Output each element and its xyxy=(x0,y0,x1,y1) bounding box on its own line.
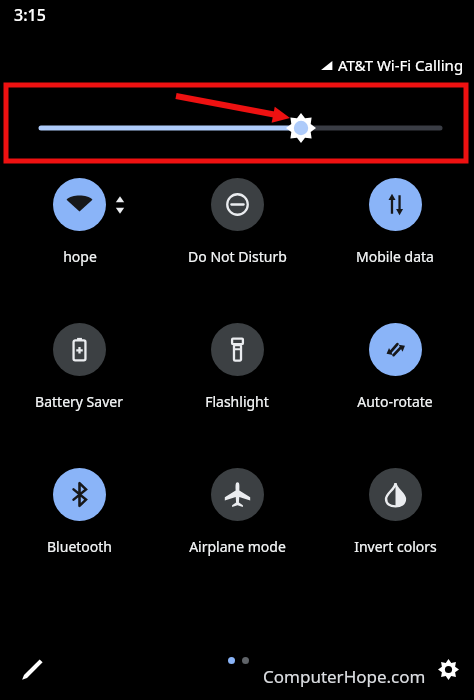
staticText: Battery Saver xyxy=(35,392,123,411)
button[interactable]: Edit tiles xyxy=(10,647,54,691)
button[interactable]: Invert colors xyxy=(350,468,441,556)
staticText: Flashlight xyxy=(205,392,269,411)
staticText: Bluetooth xyxy=(47,537,112,556)
staticText: ComputerHope.com xyxy=(263,665,426,688)
button[interactable]: Bluetooth xyxy=(43,468,116,556)
staticText: 3:15 xyxy=(14,4,46,26)
button[interactable]: Settings xyxy=(426,647,470,691)
staticText: Mobile data xyxy=(356,247,434,266)
button[interactable] xyxy=(0,83,474,165)
staticText: Auto-rotate xyxy=(357,392,433,411)
staticText: Do Not Disturb xyxy=(188,247,287,266)
staticText: Invert colors xyxy=(354,537,437,556)
staticText: hope xyxy=(63,247,97,266)
button[interactable]: Do Not Disturb xyxy=(184,178,291,266)
button[interactable]: Auto-rotate xyxy=(353,323,437,411)
button[interactable]: Mobile data xyxy=(352,178,438,266)
button[interactable]: Battery Saver xyxy=(31,323,127,411)
staticText: Airplane mode xyxy=(189,537,286,556)
button[interactable]: Flashlight xyxy=(201,323,273,411)
button[interactable]: hope xyxy=(49,178,110,266)
staticText: AT&T Wi-Fi Calling xyxy=(338,55,464,75)
button[interactable]: Airplane mode xyxy=(185,468,290,556)
